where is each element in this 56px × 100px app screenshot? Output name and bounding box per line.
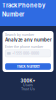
staticText: Track Number bbox=[16, 64, 39, 69]
staticText: Enter the phone number bbox=[5, 45, 43, 49]
staticText: Users bbox=[23, 83, 33, 87]
staticText: Track Phone by bbox=[2, 2, 45, 9]
staticText: 300K+ bbox=[20, 78, 35, 84]
staticText: +1 555 000-0000 bbox=[12, 51, 39, 55]
staticText: Number bbox=[2, 11, 24, 18]
staticText: Analyze any number bbox=[5, 37, 52, 43]
staticText: Search by number bbox=[5, 33, 34, 37]
staticText: Trust Us bbox=[21, 87, 35, 91]
button[interactable]: Track Number bbox=[5, 63, 51, 70]
